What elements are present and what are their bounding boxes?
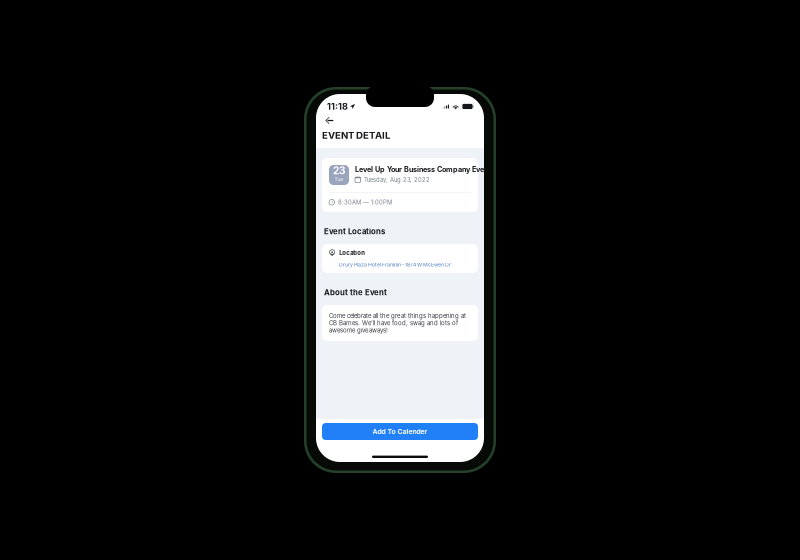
staticText: 23 bbox=[333, 164, 345, 177]
staticText: EVENT DETAIL bbox=[322, 129, 390, 141]
button[interactable]: Drury Plaza Hotel Franklin - 1874 W McEw… bbox=[329, 262, 472, 268]
staticText: Drury Plaza Hotel Franklin - 1874 W McEw… bbox=[339, 262, 451, 268]
staticText: About the Event bbox=[324, 288, 387, 297]
staticText: Location bbox=[339, 249, 365, 256]
staticText: Come celebrate all the great things happ… bbox=[329, 312, 466, 334]
button[interactable]: Add To Calender bbox=[322, 423, 478, 440]
button[interactable]: Back bbox=[316, 115, 344, 126]
staticText: Add To Calender bbox=[372, 427, 427, 436]
staticText: 11:18 bbox=[327, 101, 348, 112]
staticText: Tue bbox=[334, 177, 343, 182]
staticText: Tuesday, Aug 23, 2022 bbox=[364, 176, 430, 183]
staticText: 8:30AM — 1:00PM bbox=[338, 199, 392, 206]
staticText: Event Locations bbox=[324, 227, 385, 236]
staticText: Level Up Your Business Company Event bbox=[355, 165, 491, 174]
